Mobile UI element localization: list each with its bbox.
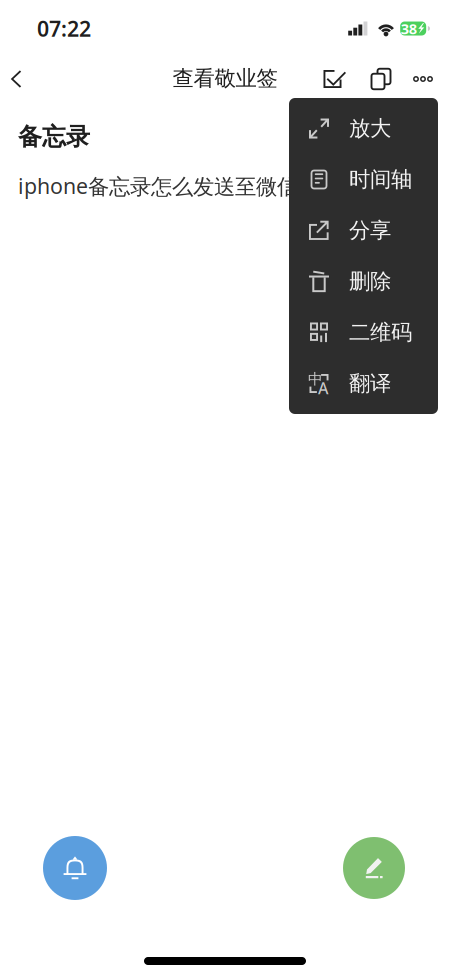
button[interactable]: 放大 <box>289 103 438 154</box>
staticText: iphone备忘录怎么发送至微信好友? <box>18 171 349 200</box>
staticText: 38 <box>401 19 417 38</box>
staticText: 放大 <box>349 115 391 142</box>
staticText: 分享 <box>349 217 391 244</box>
button[interactable]: Reminder <box>43 836 107 900</box>
button[interactable]: 中 <box>289 358 438 409</box>
button[interactable]: 分享 <box>289 205 438 256</box>
button[interactable]: 时间轴 <box>289 154 438 205</box>
staticText: 中 <box>308 370 323 388</box>
staticText: 二维码 <box>349 319 412 346</box>
button[interactable]: 删除 <box>289 256 438 307</box>
staticText: 备忘录 <box>18 122 90 151</box>
staticText: 时间轴 <box>349 166 412 193</box>
button[interactable]: Select <box>312 57 358 101</box>
staticText: 删除 <box>349 268 391 295</box>
button[interactable]: Copy <box>358 57 404 101</box>
button[interactable]: Back <box>0 57 32 101</box>
staticText: 查看敬业签 <box>172 65 277 92</box>
staticText: A <box>318 377 328 399</box>
button[interactable]: 二维码 <box>289 307 438 358</box>
staticText: 翻译 <box>349 370 391 397</box>
staticText: 07:22 <box>37 14 91 43</box>
button[interactable]: Edit <box>343 837 405 899</box>
button[interactable]: More <box>404 57 442 101</box>
